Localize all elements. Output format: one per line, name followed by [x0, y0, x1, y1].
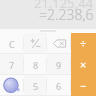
other: Plus minus	[30, 38, 41, 49]
button[interactable]: 5	[24, 75, 47, 96]
staticText: 5	[33, 80, 39, 92]
button[interactable]: 6	[47, 75, 71, 96]
staticText: −	[80, 78, 87, 93]
button[interactable]: ×	[71, 54, 96, 75]
staticText: 9	[56, 59, 62, 71]
staticText: =2.238,6	[39, 5, 94, 24]
staticText: ×	[80, 57, 87, 72]
button[interactable]: Plus minus	[24, 33, 47, 54]
button[interactable]: 9	[47, 54, 71, 75]
staticText: 7	[9, 59, 15, 71]
staticText: 21.125,44	[34, 0, 94, 12]
button[interactable]: 8	[24, 54, 47, 75]
staticText: 8	[33, 59, 39, 71]
button[interactable]: C	[0, 33, 24, 54]
other: Four	[3, 77, 21, 95]
button[interactable]: Backspace	[47, 33, 71, 54]
button[interactable]: Four	[0, 75, 24, 96]
button[interactable]: ÷	[71, 33, 96, 54]
button[interactable]: 7	[0, 54, 24, 75]
other: Backspace	[53, 39, 66, 48]
button[interactable]: −	[71, 75, 96, 96]
staticText: 6	[56, 80, 62, 92]
staticText: C	[9, 38, 15, 50]
staticText: ÷	[80, 36, 87, 51]
